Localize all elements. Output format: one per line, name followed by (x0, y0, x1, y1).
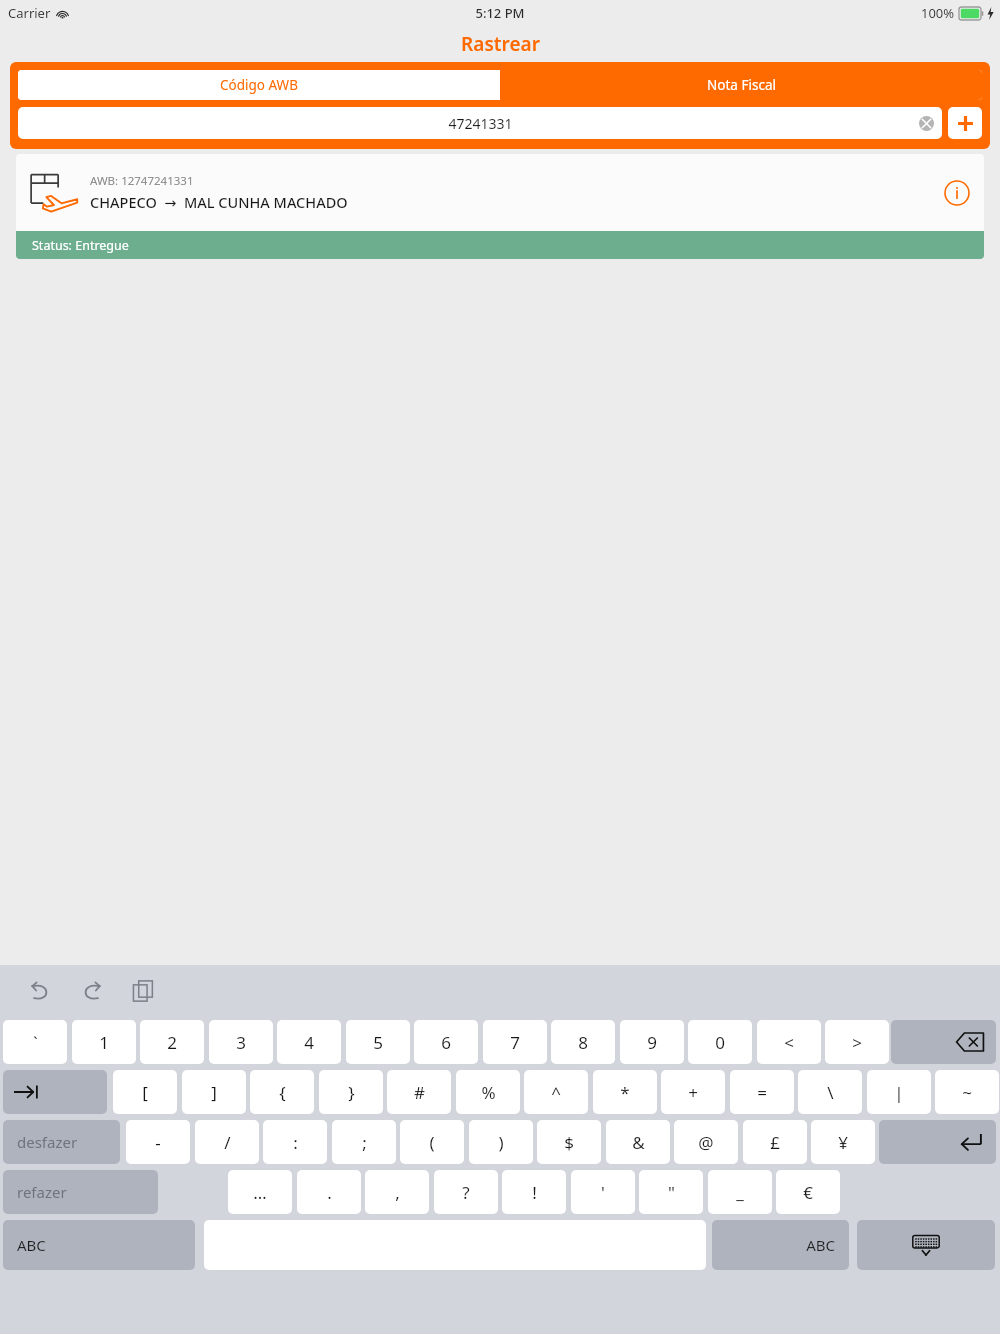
staticText: 1 (99, 1031, 109, 1054)
staticText: 6 (441, 1031, 451, 1054)
button[interactable]: / (195, 1120, 259, 1164)
button[interactable]: - (126, 1120, 190, 1164)
staticText: $ (564, 1131, 574, 1154)
staticText: _ (736, 1181, 744, 1204)
button[interactable]: Backspace (891, 1020, 996, 1064)
staticText: 5 (373, 1031, 383, 1054)
button[interactable]: { (250, 1070, 314, 1114)
button[interactable]: Clear text (919, 116, 934, 131)
staticText: Nota Fiscal (707, 76, 776, 94)
button[interactable]: 47241331 (18, 107, 942, 139)
staticText: ABC (806, 1235, 835, 1255)
staticText: # (414, 1081, 425, 1104)
button[interactable]: 4 (277, 1020, 341, 1064)
staticText: / (224, 1131, 231, 1154)
staticText: \ (827, 1081, 834, 1104)
staticText: * (620, 1081, 630, 1104)
button[interactable]: | (867, 1070, 931, 1114)
button[interactable]: _ (708, 1170, 772, 1214)
button[interactable]: + (661, 1070, 725, 1114)
staticText: 100% (921, 4, 955, 22)
staticText: { (279, 1081, 286, 1104)
button[interactable]: £ (743, 1120, 807, 1164)
button[interactable]: 8 (551, 1020, 615, 1064)
button[interactable]: Add (948, 107, 982, 139)
staticText: ` (33, 1031, 38, 1054)
button[interactable]: Nota Fiscal (500, 70, 982, 100)
button[interactable]: & (606, 1120, 670, 1164)
button[interactable]: Tab (3, 1070, 107, 1114)
button[interactable]: ^ (524, 1070, 588, 1114)
button[interactable]: ABC (712, 1220, 849, 1270)
button[interactable]: % (456, 1070, 520, 1114)
button[interactable]: [ (113, 1070, 177, 1114)
staticText: ! (532, 1181, 537, 1204)
button[interactable]: : (263, 1120, 327, 1164)
button[interactable]: 5 (346, 1020, 410, 1064)
button[interactable]: 0 (688, 1020, 752, 1064)
staticText: @ (698, 1131, 714, 1154)
button[interactable]: 9 (620, 1020, 684, 1064)
button[interactable]: 6 (414, 1020, 478, 1064)
button[interactable]: ¥ (811, 1120, 875, 1164)
button[interactable]: " (639, 1170, 703, 1214)
staticText: & (632, 1131, 645, 1154)
button[interactable]: > (825, 1020, 889, 1064)
staticText: = (757, 1081, 767, 1104)
staticText: refazer (17, 1182, 67, 1202)
button[interactable]: } (319, 1070, 383, 1114)
staticText: % (481, 1081, 496, 1104)
staticText: CHAPECO → MAL CUNHA MACHADO (90, 192, 348, 212)
button[interactable]: € (776, 1170, 840, 1214)
staticText: 2 (167, 1031, 177, 1054)
staticText: 3 (236, 1031, 246, 1054)
button[interactable]: Undo (22, 973, 58, 1009)
staticText: , (395, 1181, 400, 1204)
button[interactable]: 2 (140, 1020, 204, 1064)
button[interactable]: ABC (3, 1220, 195, 1270)
staticText: ABC (17, 1235, 46, 1255)
button[interactable]: ` (3, 1020, 67, 1064)
staticText: … (253, 1181, 267, 1204)
button[interactable]: . (297, 1170, 361, 1214)
button[interactable]: refazer (3, 1170, 158, 1214)
button[interactable]: ( (400, 1120, 464, 1164)
button[interactable]: \ (798, 1070, 862, 1114)
button[interactable]: desfazer (3, 1120, 120, 1164)
button[interactable]: 3 (209, 1020, 273, 1064)
button[interactable]: Redo (74, 973, 110, 1009)
button[interactable]: ' (571, 1170, 635, 1214)
staticText: desfazer (17, 1132, 78, 1152)
staticText: € (803, 1181, 813, 1204)
button[interactable]: = (730, 1070, 794, 1114)
button[interactable]: ] (182, 1070, 246, 1114)
button[interactable]: ? (434, 1170, 498, 1214)
staticText: Rastrear (461, 31, 540, 57)
button[interactable]: AWB: 12747241331 (16, 154, 984, 259)
button[interactable]: ! (502, 1170, 566, 1214)
button[interactable]: $ (537, 1120, 601, 1164)
button[interactable]: 1 (72, 1020, 136, 1064)
staticText: 0 (715, 1031, 725, 1054)
staticText: ^ (551, 1081, 561, 1104)
button[interactable]: ) (469, 1120, 533, 1164)
button[interactable]: Hide keyboard (857, 1220, 995, 1270)
button[interactable]: 7 (483, 1020, 547, 1064)
button[interactable]: Return (879, 1120, 996, 1164)
button[interactable]: Information (942, 178, 972, 208)
button[interactable]: Paste (126, 973, 162, 1009)
button[interactable]: @ (674, 1120, 738, 1164)
button[interactable]: * (593, 1070, 657, 1114)
staticText: : (293, 1131, 298, 1154)
button[interactable]: Código AWB (18, 70, 500, 100)
button[interactable]: # (387, 1070, 451, 1114)
staticText: ' (601, 1181, 605, 1204)
button[interactable]: < (757, 1020, 821, 1064)
button[interactable]: ; (332, 1120, 396, 1164)
button[interactable]: , (365, 1170, 429, 1214)
staticText: 8 (578, 1031, 588, 1054)
button[interactable]: ~ (935, 1070, 999, 1114)
staticText: AWB: 12747241331 (90, 173, 194, 189)
button[interactable]: … (228, 1170, 292, 1214)
